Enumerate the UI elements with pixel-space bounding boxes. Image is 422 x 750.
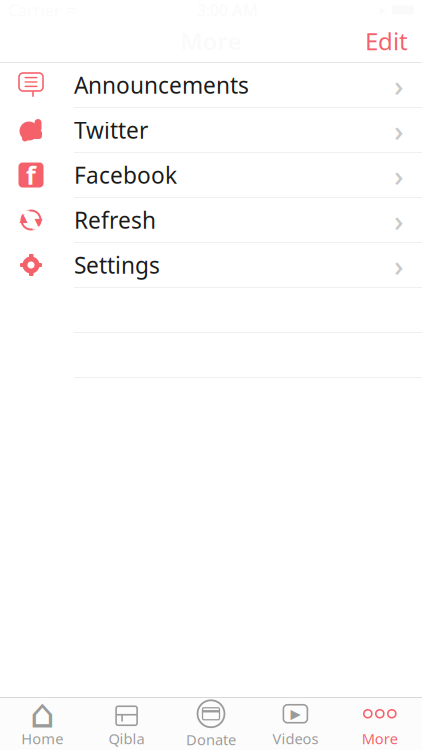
staticText: ⌂ <box>30 691 55 736</box>
button[interactable]: Announcements <box>0 63 422 108</box>
button[interactable]: ⌂ <box>0 696 84 750</box>
staticText: More <box>362 729 398 748</box>
staticText: Videos <box>272 729 318 748</box>
staticText: Facebook <box>74 160 177 190</box>
staticText: › <box>394 65 404 104</box>
button[interactable]: Donate <box>169 695 253 750</box>
staticText: Home <box>21 729 63 748</box>
button[interactable]: f <box>0 153 422 198</box>
staticText: Qibla <box>109 729 145 748</box>
staticText: f <box>26 158 36 192</box>
staticText: Donate <box>186 730 236 749</box>
button[interactable]: Settings <box>0 243 422 288</box>
button[interactable]: Twitter <box>0 108 422 153</box>
staticText: › <box>394 155 404 194</box>
button[interactable]: ▲ <box>0 198 422 243</box>
button[interactable]: ▶ <box>253 696 338 750</box>
staticText: ▲ <box>19 212 27 224</box>
button[interactable]: More <box>338 696 422 750</box>
staticText: Settings <box>74 250 160 280</box>
staticText: ▶ <box>290 706 300 721</box>
staticText: Twitter <box>74 115 148 145</box>
staticText: Announcements <box>74 70 249 100</box>
staticText: Edit <box>365 25 408 57</box>
staticText: ▼ <box>34 216 42 228</box>
button[interactable]: Edit <box>351 19 422 63</box>
staticText: › <box>394 200 404 239</box>
staticText: › <box>394 110 404 149</box>
staticText: Refresh <box>74 205 156 235</box>
staticText: › <box>394 245 404 284</box>
button[interactable]: Qibla <box>84 696 169 750</box>
